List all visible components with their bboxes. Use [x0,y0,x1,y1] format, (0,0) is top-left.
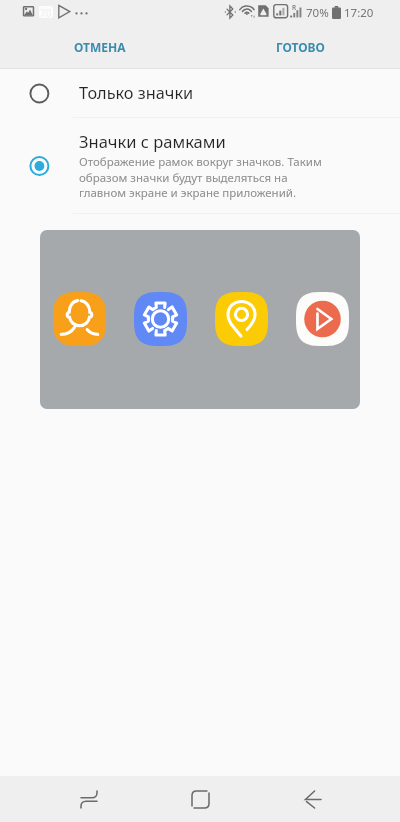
button[interactable]: Maps [215,292,268,346]
button[interactable]: ГОТОВО [200,28,400,66]
staticText: 70% [306,5,329,21]
button[interactable]: Play [296,292,349,346]
button[interactable]: Только значки [0,69,400,117]
button[interactable]: Back [282,776,344,822]
button[interactable]: Значки с рамками [0,118,400,213]
staticText: Только значки [79,82,194,104]
staticText: Значки с рамками [79,130,226,152]
staticText: R [292,3,297,12]
button[interactable]: Home [169,776,231,822]
staticText: ОТМЕНА [74,39,126,55]
staticText: ГОТОВО [276,39,325,55]
button[interactable]: Settings [134,292,187,346]
button[interactable]: Recents [58,776,120,822]
button[interactable]: Contacts [53,292,106,346]
staticText: Отображение рамок вокруг значков. Таким … [79,154,328,200]
staticText: 70 [40,6,52,18]
staticText: 17:20 [344,5,374,21]
button[interactable]: ОТМЕНА [0,28,200,66]
